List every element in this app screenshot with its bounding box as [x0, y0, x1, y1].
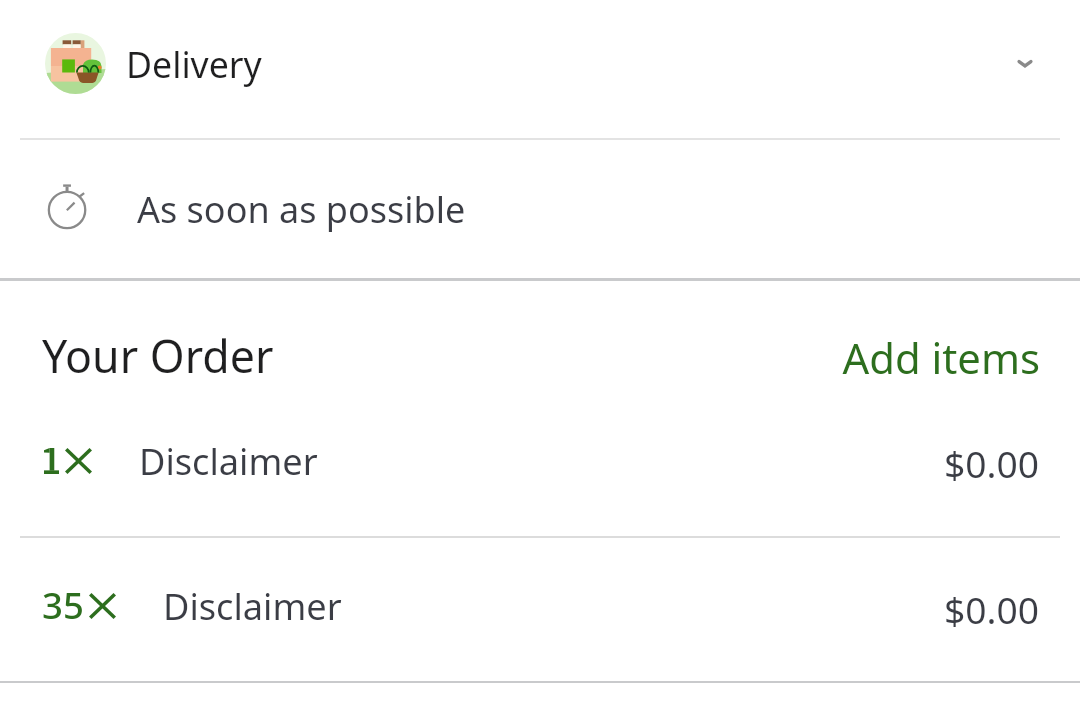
staticText: As soon as possible: [137, 185, 466, 234]
staticText: Your Order: [42, 325, 274, 386]
button[interactable]: As soon as possible: [0, 141, 1080, 278]
button[interactable]: Change delivery method: [1001, 40, 1049, 88]
staticText: Disclaimer: [163, 581, 342, 630]
staticText: $0.00: [0, 438, 1039, 489]
staticText: Disclaimer: [139, 436, 318, 485]
staticText: Delivery: [126, 40, 262, 89]
button[interactable]: 35: [0, 539, 1080, 681]
button[interactable]: Add items: [816, 326, 1056, 388]
staticText: $0.00: [0, 584, 1039, 635]
staticText: Add items: [816, 329, 1040, 386]
button[interactable]: Disclaimer: [0, 400, 1080, 536]
staticText: 35: [42, 580, 84, 630]
button[interactable]: Delivery: [0, 0, 1080, 138]
